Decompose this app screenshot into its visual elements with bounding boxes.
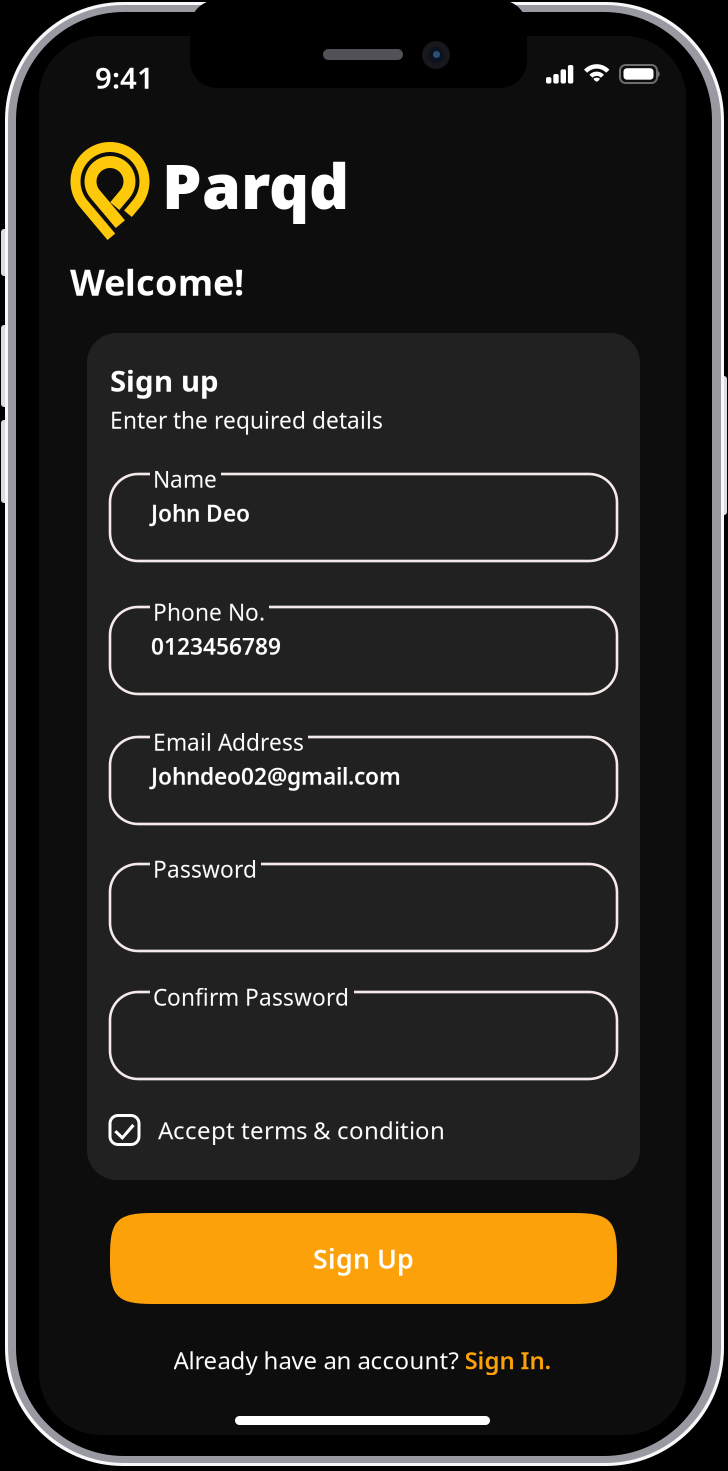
- staticText: Enter the required details: [110, 405, 383, 435]
- staticText: Accept terms & condition: [158, 1114, 445, 1146]
- staticText: Sign Up: [313, 1241, 414, 1276]
- staticText: Confirm Password: [153, 982, 349, 1012]
- staticText: Welcome!: [70, 258, 244, 306]
- staticText: Parqd: [162, 143, 349, 226]
- staticText: 0123456789: [151, 631, 281, 661]
- staticText: Already have an account?: [173, 1344, 464, 1376]
- staticText: Email Address: [153, 727, 304, 757]
- staticText: 9:41: [95, 58, 154, 97]
- button[interactable]: Sign Up: [110, 1213, 617, 1304]
- staticText: Sign up: [110, 361, 219, 400]
- staticText: Phone No.: [153, 597, 265, 627]
- staticText: Password: [153, 854, 257, 884]
- button[interactable]: Already have an account?: [39, 1340, 686, 1380]
- staticText: Johndeo02@gmail.com: [151, 761, 401, 791]
- staticText: Sign In.: [464, 1344, 551, 1376]
- staticText: Name: [153, 464, 217, 494]
- staticText: John Deo: [151, 498, 250, 528]
- button[interactable]: Accept terms & condition: [110, 1108, 617, 1152]
